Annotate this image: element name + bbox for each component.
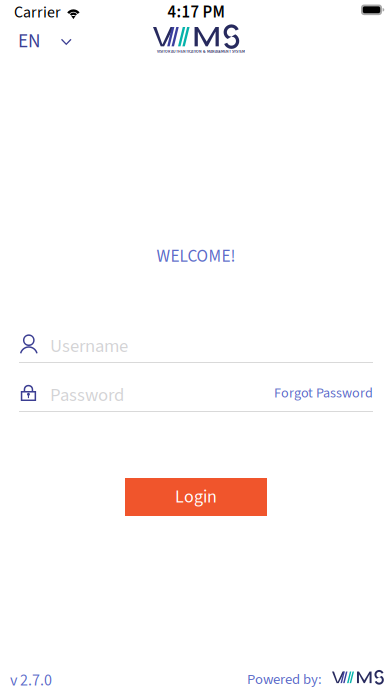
staticText: WELCOME! bbox=[156, 244, 235, 269]
staticText: Password bbox=[50, 382, 124, 409]
staticText: Powered by: bbox=[247, 669, 322, 690]
staticText: 4:17 PM bbox=[167, 0, 224, 24]
button[interactable]: EN bbox=[0, 18, 90, 64]
staticText: Login bbox=[175, 484, 217, 510]
staticText: Forgot Password bbox=[274, 383, 373, 403]
staticText: Carrier bbox=[14, 1, 61, 24]
button[interactable]: Login bbox=[125, 478, 267, 516]
staticText: EN bbox=[18, 27, 41, 55]
staticText: VISITOR AUTHENTICATION & MANAGEMENT SYST… bbox=[157, 49, 245, 54]
staticText: v 2.7.0 bbox=[10, 669, 52, 692]
staticText: Username bbox=[50, 333, 128, 360]
button[interactable]: Forgot Password bbox=[269, 377, 378, 409]
